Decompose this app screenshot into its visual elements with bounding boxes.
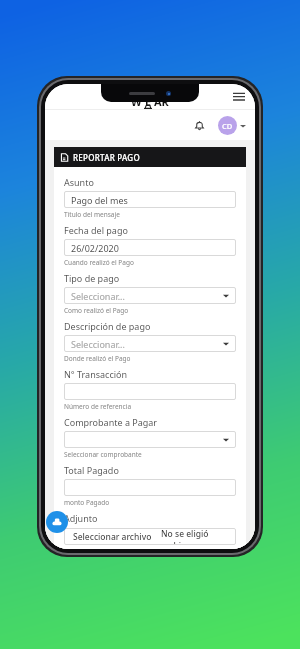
staticText: No se eligió archivo: [161, 528, 236, 545]
button[interactable]: Chat: [46, 511, 68, 533]
staticText: AR: [154, 94, 169, 109]
button[interactable]: [64, 431, 236, 448]
staticText: Pago del mes: [71, 194, 128, 206]
staticText: Seleccionar archivo: [73, 531, 152, 543]
button[interactable]: Seleccionar...: [64, 287, 236, 304]
staticText: Adjunto: [64, 512, 98, 524]
staticText: Seleccionar...: [71, 338, 125, 350]
staticText: Comprobante a Pagar: [64, 416, 158, 428]
staticText: W: [131, 94, 142, 109]
button[interactable]: 26/02/2020: [64, 239, 236, 256]
staticText: 26/02/2020: [71, 242, 119, 254]
staticText: Descripción de pago: [64, 320, 151, 332]
staticText: Tipo de pago: [64, 272, 120, 284]
button[interactable]: Pago del mes: [64, 191, 236, 208]
button[interactable]: Seleccionar archivo: [64, 528, 236, 545]
staticText: Como realizó el Pago: [64, 306, 129, 315]
button[interactable]: [64, 479, 236, 496]
staticText: Asunto: [64, 176, 94, 188]
staticText: REPORTAR PAGO: [73, 152, 140, 163]
staticText: Seleccionar...: [71, 290, 125, 302]
staticText: Título del mensaje: [64, 210, 120, 219]
staticText: Cuando realizó el Pago: [64, 258, 134, 267]
button[interactable]: Seleccionar...: [64, 335, 236, 352]
staticText: N° Transacción: [64, 368, 128, 380]
staticText: Total Pagado: [64, 464, 119, 476]
staticText: E: [145, 94, 152, 109]
staticText: Seleccionar comprobante: [64, 450, 142, 459]
staticText: Fecha del pago: [64, 224, 128, 236]
button[interactable]: Account menu: [218, 116, 246, 135]
staticText: Donde realizó el Pago: [64, 354, 131, 363]
button[interactable]: [64, 383, 236, 400]
staticText: monto Pagado: [64, 498, 110, 507]
staticText: CD: [222, 121, 233, 131]
button[interactable]: Menu: [230, 88, 248, 106]
staticText: Número de referencia: [64, 402, 132, 411]
button[interactable]: Notifications: [190, 116, 208, 134]
